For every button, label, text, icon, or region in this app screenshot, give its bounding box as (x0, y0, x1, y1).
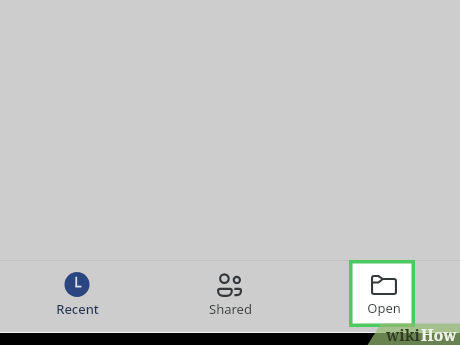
button[interactable]: Shared (154, 261, 307, 333)
button[interactable]: Recent (0, 261, 154, 333)
staticText: Open (367, 299, 401, 317)
staticText: Recent (56, 300, 99, 318)
other: Shared (217, 273, 242, 297)
other: Open (371, 275, 397, 295)
staticText: Shared (209, 300, 252, 318)
staticText: How (421, 324, 457, 345)
staticText: wiki (386, 324, 421, 345)
other: Recent (64, 272, 90, 297)
button[interactable]: Open (351, 261, 417, 325)
